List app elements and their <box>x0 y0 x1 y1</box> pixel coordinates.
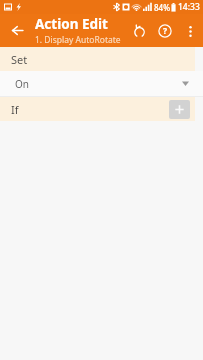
button[interactable]: More options <box>178 19 202 43</box>
staticText: 14:33 <box>178 1 200 13</box>
button[interactable]: Back <box>0 14 34 47</box>
staticText: Set <box>11 52 28 67</box>
staticText: 1. Display AutoRotate <box>35 34 121 46</box>
staticText: If <box>11 102 19 117</box>
button[interactable]: On <box>0 71 203 96</box>
staticText: Action Edit <box>35 15 108 33</box>
button[interactable]: Add condition <box>169 100 190 119</box>
button[interactable]: Set <box>0 47 195 71</box>
staticText: On <box>15 77 29 91</box>
staticText: 84% <box>154 2 170 13</box>
button[interactable]: Help <box>152 18 178 44</box>
staticText: ? <box>163 25 168 37</box>
button[interactable]: Undo <box>126 18 152 44</box>
